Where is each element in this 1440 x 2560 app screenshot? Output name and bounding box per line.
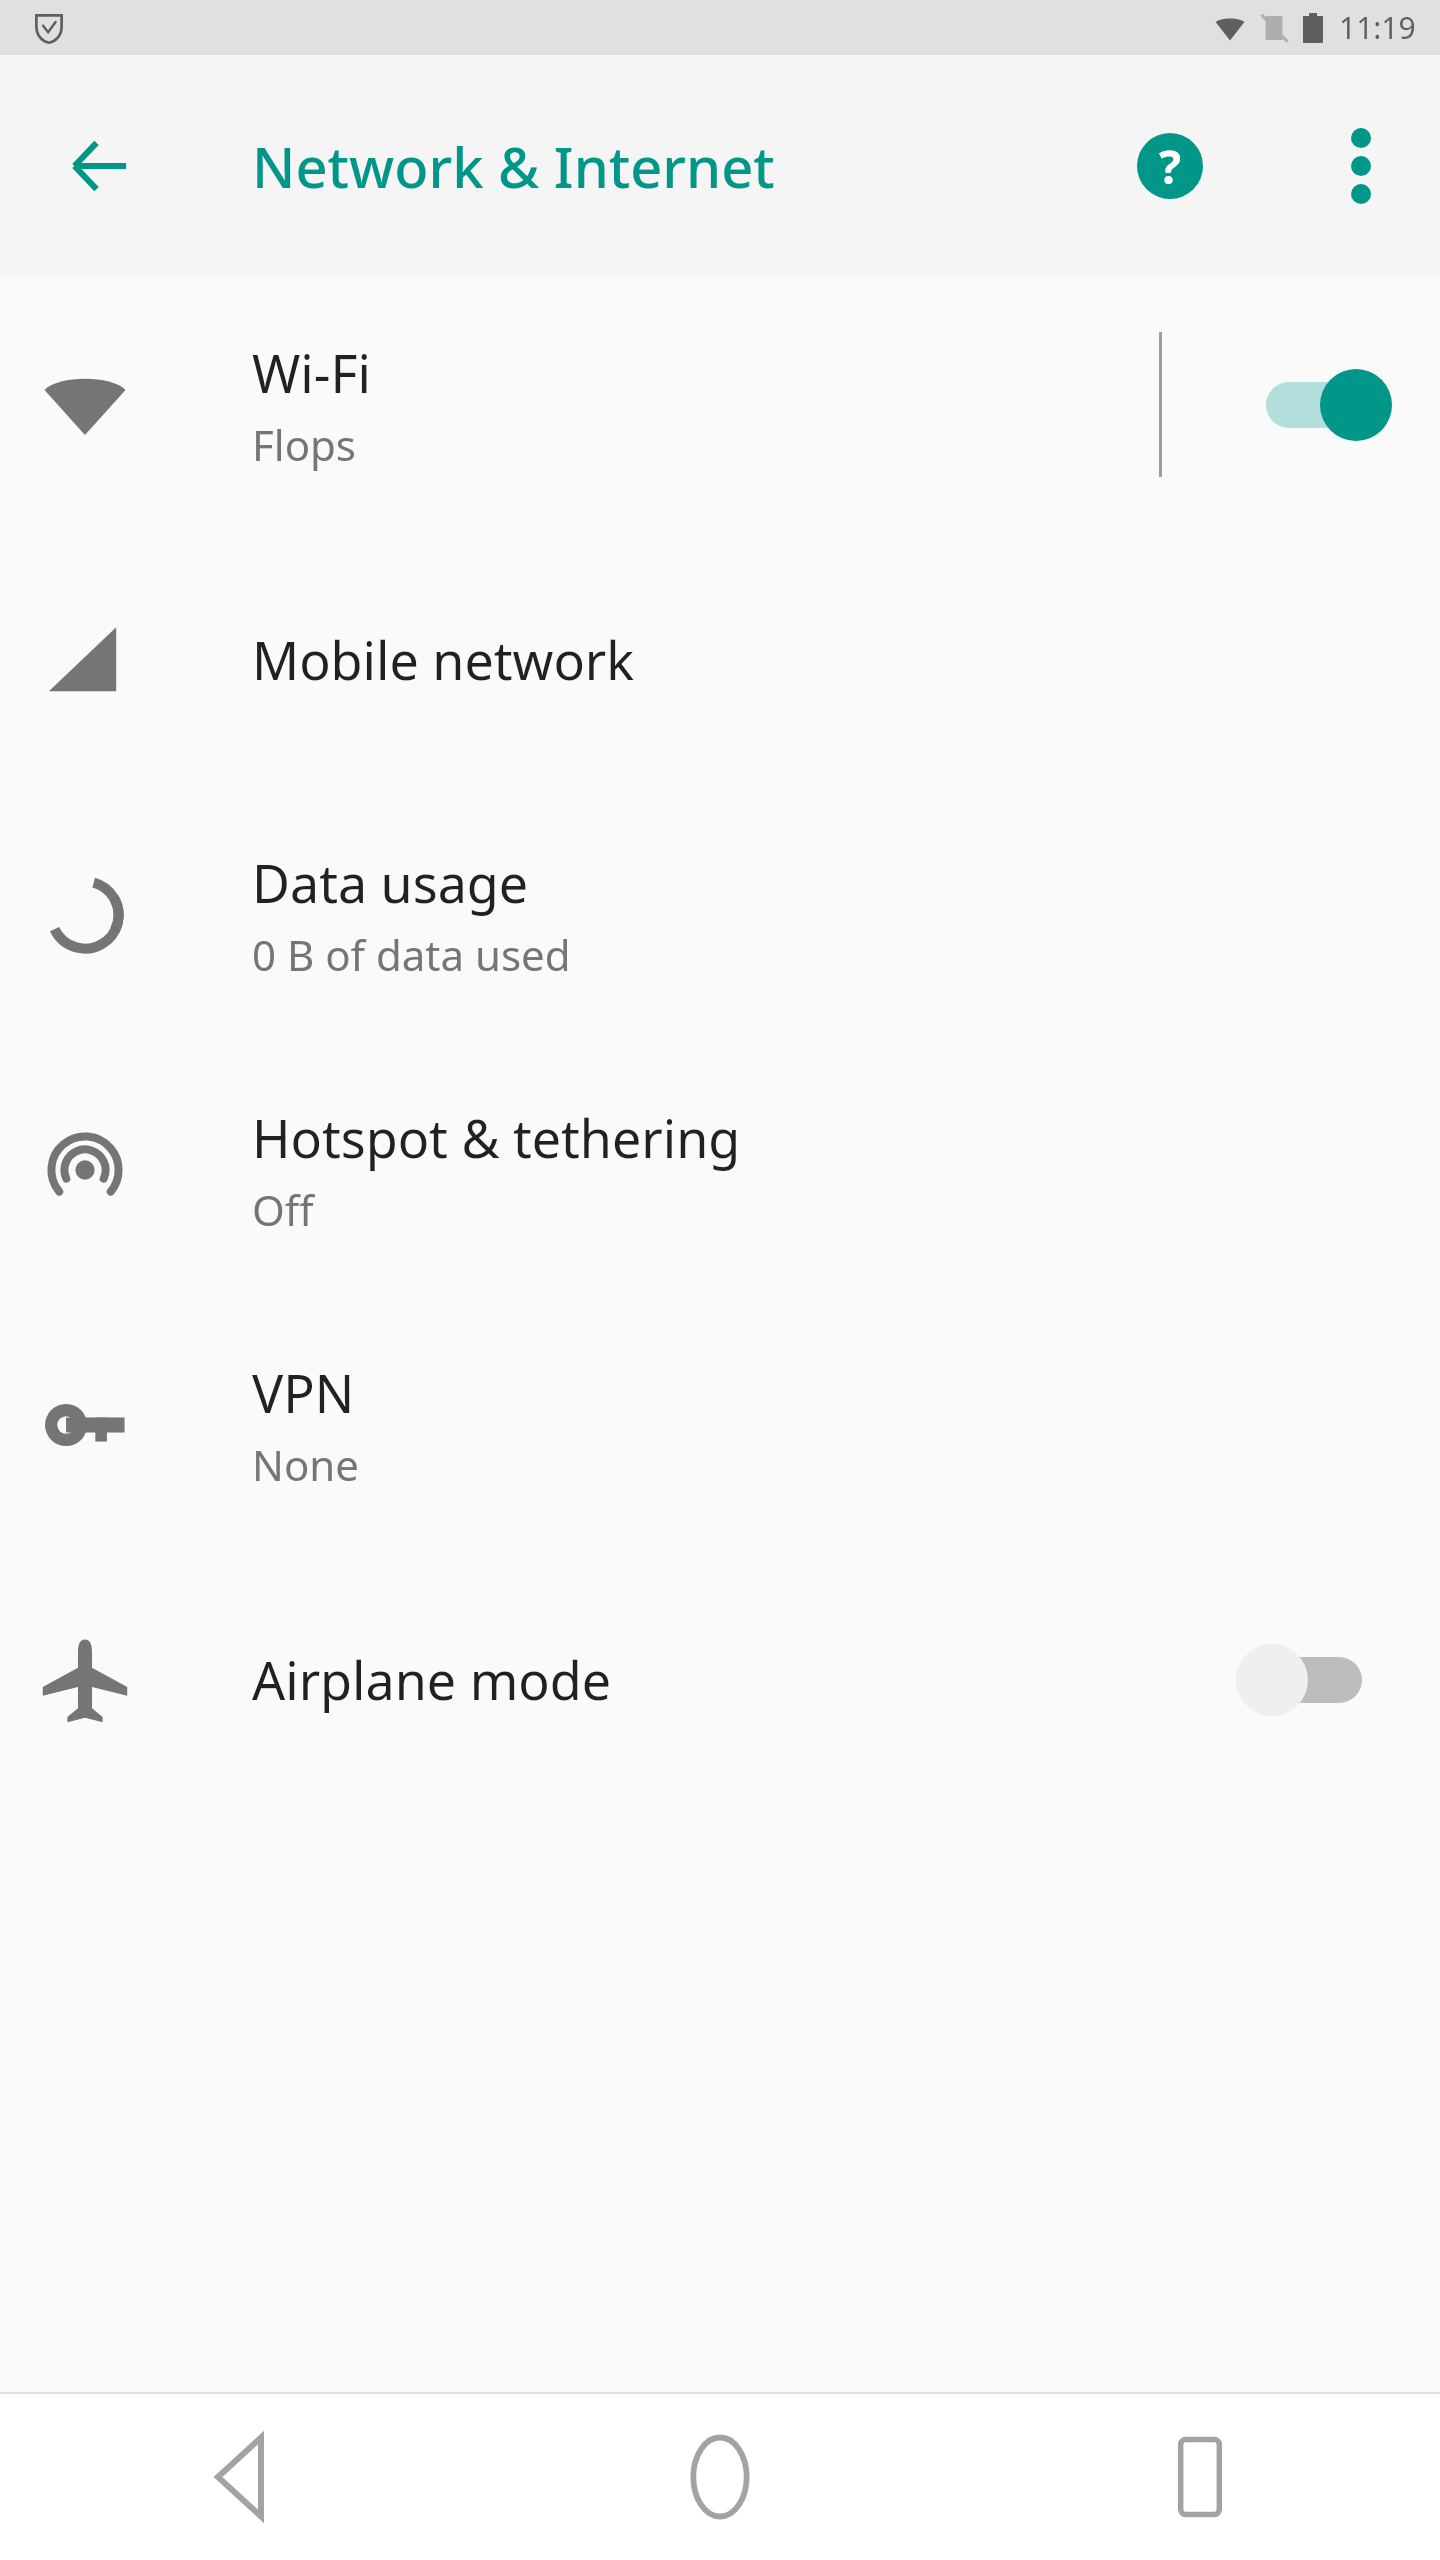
staticText: VPN — [252, 1357, 355, 1428]
staticText: Network & Internet — [252, 128, 775, 204]
staticText: Data usage — [252, 847, 529, 918]
staticText: Off — [252, 1181, 314, 1238]
button[interactable]: Home — [480, 2394, 960, 2560]
staticText: Wi-Fi — [252, 337, 371, 408]
button[interactable]: Mobile network — [0, 532, 1440, 787]
staticText: Flops — [252, 416, 356, 473]
staticText: None — [252, 1436, 359, 1493]
button[interactable]: Data usage — [0, 787, 1440, 1042]
staticText: 11:19 — [1339, 7, 1416, 48]
staticText: 0 B of data used — [252, 926, 571, 983]
button[interactable]: Hotspot & tethering — [0, 1042, 1440, 1297]
button[interactable]: Back — [28, 94, 172, 238]
button[interactable]: Wi-Fi toggle — [1210, 325, 1430, 485]
button[interactable]: VPN — [0, 1297, 1440, 1552]
staticText: Airplane mode — [252, 1644, 612, 1715]
button[interactable]: Recent apps — [960, 2394, 1440, 2560]
button[interactable]: Back — [0, 2394, 480, 2560]
button[interactable]: Airplane mode — [0, 1552, 1440, 1807]
button[interactable]: Wi-Fi — [0, 277, 1440, 532]
staticText: Mobile network — [252, 624, 635, 695]
staticText: Hotspot & tethering — [252, 1102, 741, 1173]
staticText: ? — [1159, 135, 1181, 198]
button[interactable]: Airplane mode toggle — [1196, 1600, 1416, 1760]
button[interactable]: More options — [1296, 101, 1426, 231]
button[interactable]: Help — [1105, 101, 1235, 231]
